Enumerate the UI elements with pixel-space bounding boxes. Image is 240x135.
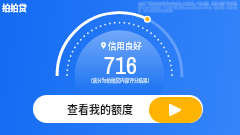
staticText: (该分为拍拍贷内部评分结果) bbox=[91, 77, 150, 84]
staticText: 信用良好 bbox=[108, 39, 142, 51]
button[interactable]: Play video bbox=[149, 97, 202, 123]
staticText: 拍拍贷 bbox=[2, 1, 27, 13]
staticText: 平台累计撮合借贷交易笔数10000万笔，借款便捷、有事不发愁，享受方便简约的普惠… bbox=[138, 1, 237, 13]
staticText: 查看我的额度 bbox=[67, 101, 133, 117]
button[interactable]: 查看我的额度 bbox=[33, 95, 203, 123]
staticText: 716 bbox=[104, 49, 137, 81]
